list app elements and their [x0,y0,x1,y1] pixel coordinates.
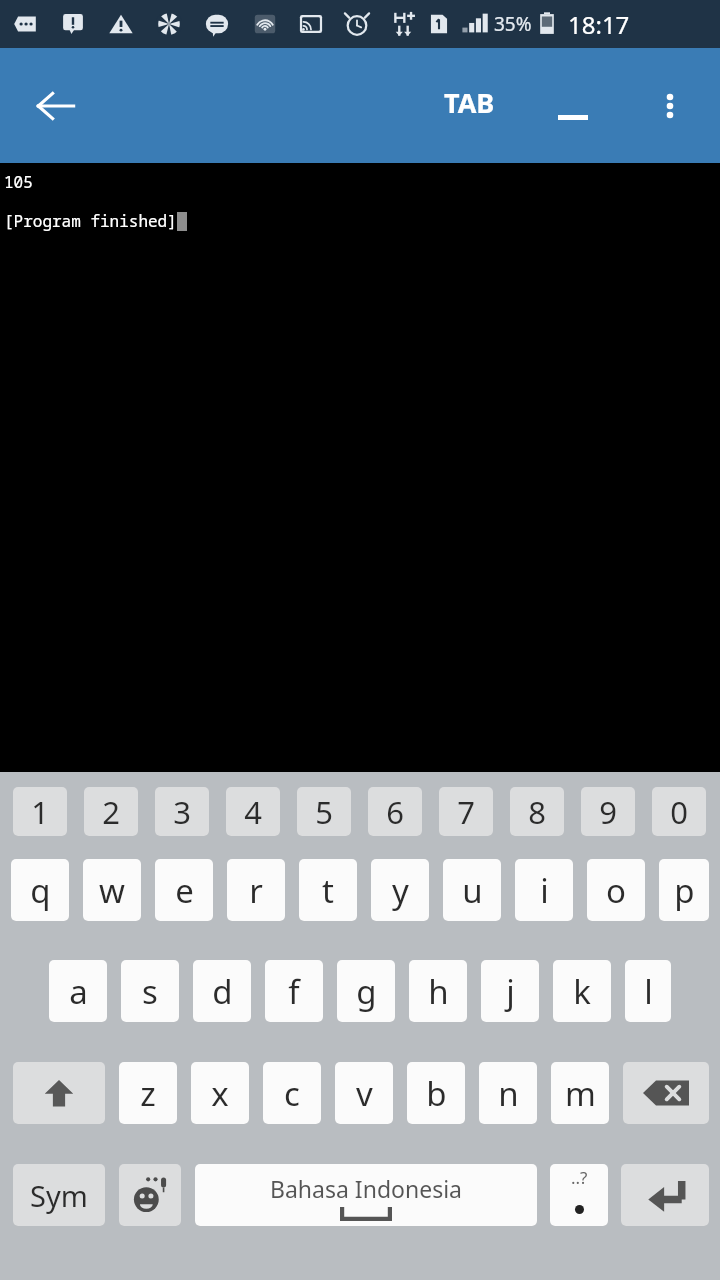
staticText: a [69,969,88,1014]
button[interactable]: k [553,960,611,1022]
button[interactable]: x [191,1062,249,1124]
button[interactable]: y [371,859,429,921]
staticText: p [674,868,695,913]
staticText: 18:17 [568,8,630,41]
staticText: d [212,969,233,1014]
staticText: n [498,1071,519,1116]
staticText: [Program finished] [4,210,177,232]
staticText: 4 [244,791,262,833]
button[interactable]: 9 [581,787,635,836]
staticText: 0 [670,791,688,833]
button[interactable]: z [119,1062,177,1124]
button[interactable]: r [227,859,285,921]
staticText: Sym [30,1176,88,1215]
button[interactable]: o [587,859,645,921]
button[interactable]: More options [638,74,702,138]
staticText: 7 [457,791,475,833]
staticText: 8 [528,791,546,833]
staticText: c [284,1071,300,1116]
button[interactable]: h [409,960,467,1022]
staticText: x [211,1071,229,1116]
staticText: s [142,969,158,1014]
staticText: u [462,868,483,913]
button[interactable]: v [335,1062,393,1124]
staticText: 5 [315,791,333,833]
button[interactable]: 4 [226,787,280,836]
button[interactable]: j [481,960,539,1022]
staticText: w [99,868,125,913]
staticText: g [356,969,377,1014]
staticText: 35% [494,11,532,37]
staticText: y [392,868,409,913]
button[interactable]: 0 [652,787,706,836]
staticText: e [175,868,194,913]
button[interactable]: Shift [13,1062,105,1124]
button[interactable]: 8 [510,787,564,836]
button[interactable]: 6 [368,787,422,836]
button[interactable]: s [121,960,179,1022]
staticText: r [249,868,263,913]
staticText: v [356,1071,373,1116]
staticText: 6 [386,791,404,833]
button[interactable]: i [515,859,573,921]
button[interactable]: Enter [621,1164,709,1226]
button[interactable]: 5 [297,787,351,836]
button[interactable]: Period [550,1164,608,1226]
button[interactable]: p [659,859,709,921]
button[interactable]: f [265,960,323,1022]
staticText: t [322,868,334,913]
button[interactable]: Back [20,70,92,142]
staticText: ..? [571,1166,588,1189]
staticText: m [565,1071,596,1116]
staticText: j [506,969,515,1014]
staticText: o [606,868,626,913]
button[interactable]: c [263,1062,321,1124]
button[interactable]: m [551,1062,609,1124]
button[interactable]: q [11,859,69,921]
button[interactable]: e [155,859,213,921]
staticText: l [644,969,653,1014]
button[interactable]: n [479,1062,537,1124]
staticText: i [540,868,549,913]
staticText: 2 [102,791,120,833]
button[interactable]: l [625,960,671,1022]
staticText: 1 [31,791,49,833]
button[interactable]: a [49,960,107,1022]
button[interactable]: 3 [155,787,209,836]
staticText: TAB [444,84,495,121]
button[interactable]: g [337,960,395,1022]
button[interactable]: Backspace [623,1062,709,1124]
staticText: f [288,969,300,1014]
staticText: b [426,1071,447,1116]
staticText: q [30,868,51,913]
button[interactable]: d [193,960,251,1022]
staticText: 9 [599,791,617,833]
button[interactable]: w [83,859,141,921]
button[interactable]: 2 [84,787,138,836]
staticText: 105 [4,171,33,193]
staticText: 3 [173,791,191,833]
staticText: k [573,969,591,1014]
button[interactable]: Emoji and voice input [119,1164,181,1226]
button[interactable]: Minimize [545,78,601,134]
button[interactable]: 1 [13,787,67,836]
staticText: z [140,1071,156,1116]
staticText: Bahasa Indonesia [270,1173,462,1204]
button[interactable]: u [443,859,501,921]
button[interactable]: Sym [13,1164,105,1226]
button[interactable]: Bahasa Indonesia [195,1164,537,1226]
staticText: h [428,969,449,1014]
button[interactable]: 7 [439,787,493,836]
button[interactable]: t [299,859,357,921]
button[interactable]: b [407,1062,465,1124]
